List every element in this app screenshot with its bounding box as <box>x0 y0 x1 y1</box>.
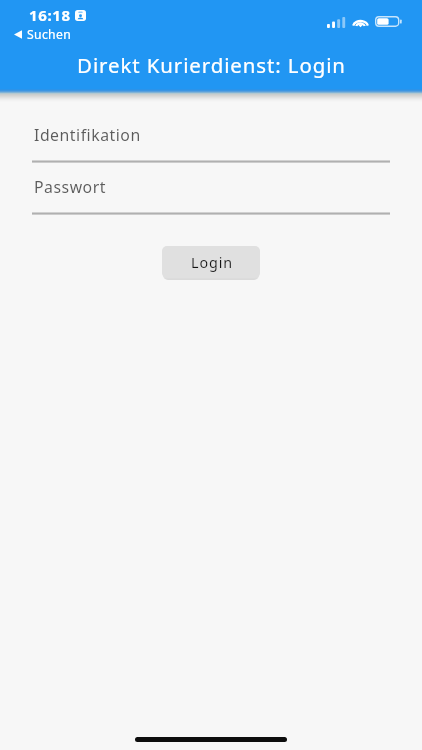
staticText: Passwort <box>34 176 106 198</box>
staticText: 16:18 <box>29 5 71 25</box>
staticText: Suchen <box>27 26 72 43</box>
other: Mobile signal <box>327 17 346 28</box>
staticText: Login <box>191 253 233 272</box>
button[interactable]: Suchen <box>14 26 72 43</box>
button[interactable]: Login <box>162 246 260 278</box>
other: Battery <box>375 16 402 27</box>
staticText: Identifikation <box>34 124 141 146</box>
staticText: Direkt Kurierdienst: Login <box>77 51 346 79</box>
other: Wi-Fi <box>352 14 369 28</box>
